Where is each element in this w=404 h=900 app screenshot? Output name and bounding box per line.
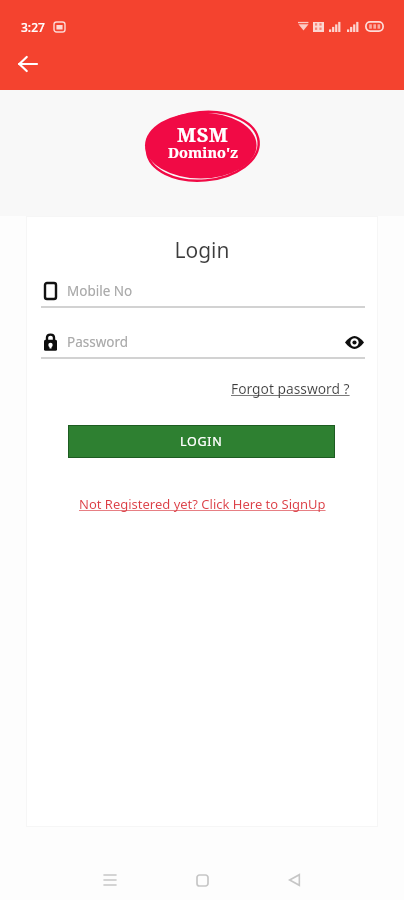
button[interactable]: LOGIN [69,426,334,457]
button[interactable]: Home [178,856,226,900]
button[interactable]: Mobile No [41,279,365,308]
button[interactable]: Show password [343,331,365,353]
staticText: 3:27 [21,19,45,35]
button[interactable]: Password [41,330,365,359]
button[interactable]: Back [9,46,45,82]
staticText: Domino'z [168,142,238,162]
button[interactable]: Not Registered yet? Click Here to SignUp [79,495,326,513]
button[interactable]: Recents [86,856,134,900]
staticText: Mobile No [67,282,365,300]
staticText: Password [67,333,343,351]
staticText: MSM [177,121,229,148]
button[interactable]: Back [270,856,318,900]
staticText: Login [26,236,378,265]
button[interactable]: Forgot password ? [231,379,350,398]
staticText: LOGIN [180,433,223,450]
